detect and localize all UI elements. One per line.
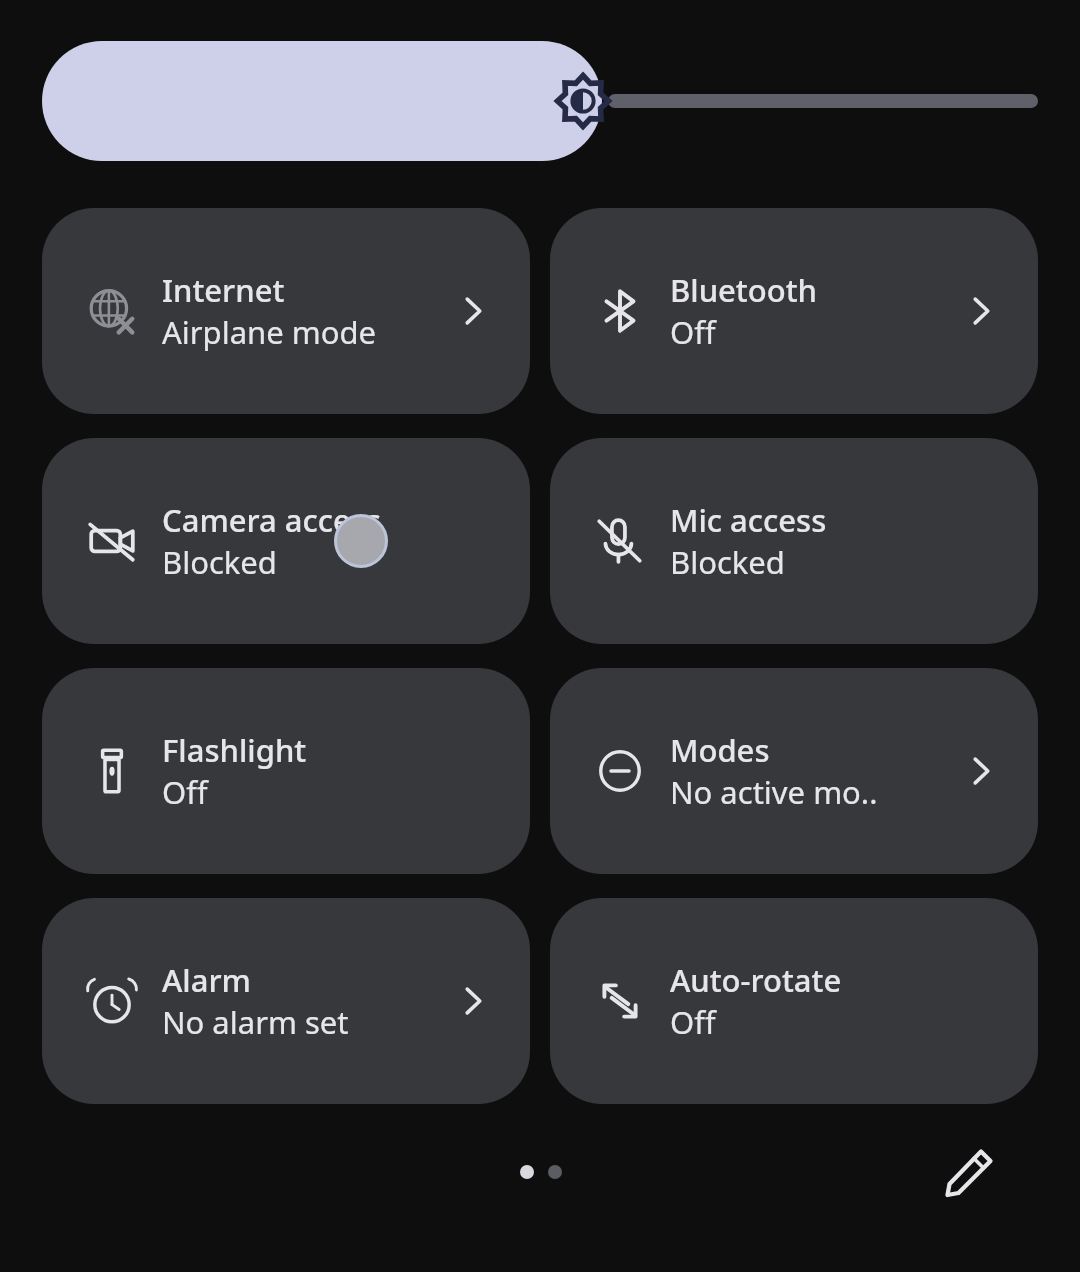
staticText: Flashlight (162, 729, 307, 771)
button[interactable]: Auto-rotate (550, 898, 1038, 1104)
staticText: Modes (670, 729, 770, 771)
button[interactable]: Internet (42, 208, 530, 414)
staticText: Airplane mode (162, 311, 377, 353)
button[interactable]: Brightness slider (42, 41, 1038, 161)
staticText: Blocked (162, 541, 277, 583)
staticText: No active mo.. (670, 771, 878, 813)
staticText: Auto-rotate (670, 959, 842, 1001)
staticText: Alarm (162, 959, 251, 1001)
staticText: Off (162, 771, 208, 813)
staticText: Blocked (670, 541, 785, 583)
button[interactable]: Flashlight (42, 668, 530, 874)
button[interactable]: Bluetooth (550, 208, 1038, 414)
staticText: Internet (162, 269, 285, 311)
staticText: Bluetooth (670, 269, 817, 311)
button[interactable]: Alarm (42, 898, 530, 1104)
staticText: No alarm set (162, 1001, 349, 1043)
button[interactable]: Mic access (550, 438, 1038, 644)
button[interactable]: Page 1 of 2 (508, 1152, 576, 1192)
staticText: Mic access (670, 499, 827, 541)
button[interactable]: Camera access (42, 438, 530, 644)
staticText: Off (670, 1001, 716, 1043)
staticText: Off (670, 311, 716, 353)
button[interactable]: Edit tiles (934, 1138, 1004, 1208)
staticText: Camera access (162, 499, 381, 541)
button[interactable]: Modes (550, 668, 1038, 874)
